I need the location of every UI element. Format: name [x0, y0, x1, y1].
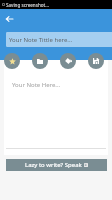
button[interactable]: Back	[0, 9, 18, 28]
button[interactable]: Favorite	[4, 53, 20, 69]
staticText: Your Note Tittle here...	[9, 36, 73, 44]
staticText: Your Note Here...	[12, 81, 61, 89]
button[interactable]: Color	[60, 53, 76, 69]
button[interactable]: Folder	[32, 53, 48, 69]
button[interactable]: Your Note Tittle here...	[6, 32, 112, 47]
button[interactable]: Save	[88, 53, 104, 69]
button[interactable]: Lazy to write? Speak	[6, 159, 107, 171]
staticText: Saving screenshot...	[6, 2, 49, 8]
staticText: Lazy to write? Speak	[25, 161, 82, 169]
